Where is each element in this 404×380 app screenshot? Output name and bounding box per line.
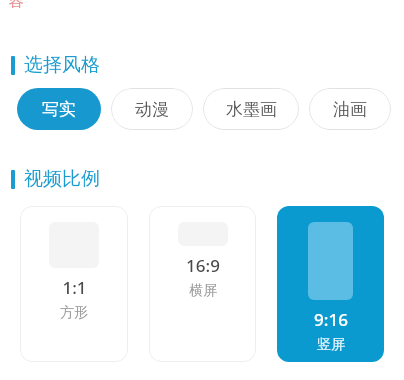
staticText: 竖屏 xyxy=(317,336,345,354)
staticText: 16:9 xyxy=(186,254,220,277)
staticText: 选择风格 xyxy=(24,53,100,77)
button[interactable]: 16:9 xyxy=(149,206,256,362)
staticText: 方形 xyxy=(60,304,88,322)
button[interactable]: 9:16 xyxy=(277,206,384,362)
button[interactable]: 写实 xyxy=(17,88,101,130)
staticText: 水墨画 xyxy=(226,99,277,120)
staticText: 油画 xyxy=(333,99,367,120)
staticText: 视频比例 xyxy=(24,167,100,191)
staticText: 动漫 xyxy=(135,99,169,120)
button[interactable]: 1:1 xyxy=(20,206,128,362)
button[interactable]: 油画 xyxy=(309,88,391,130)
staticText: 写实 xyxy=(42,99,76,120)
staticText: 横屏 xyxy=(189,282,217,300)
button[interactable]: 动漫 xyxy=(111,88,193,130)
button[interactable]: 水墨画 xyxy=(203,88,299,130)
staticText: 容 xyxy=(9,0,24,11)
staticText: 9:16 xyxy=(314,308,348,331)
staticText: 1:1 xyxy=(62,276,87,299)
